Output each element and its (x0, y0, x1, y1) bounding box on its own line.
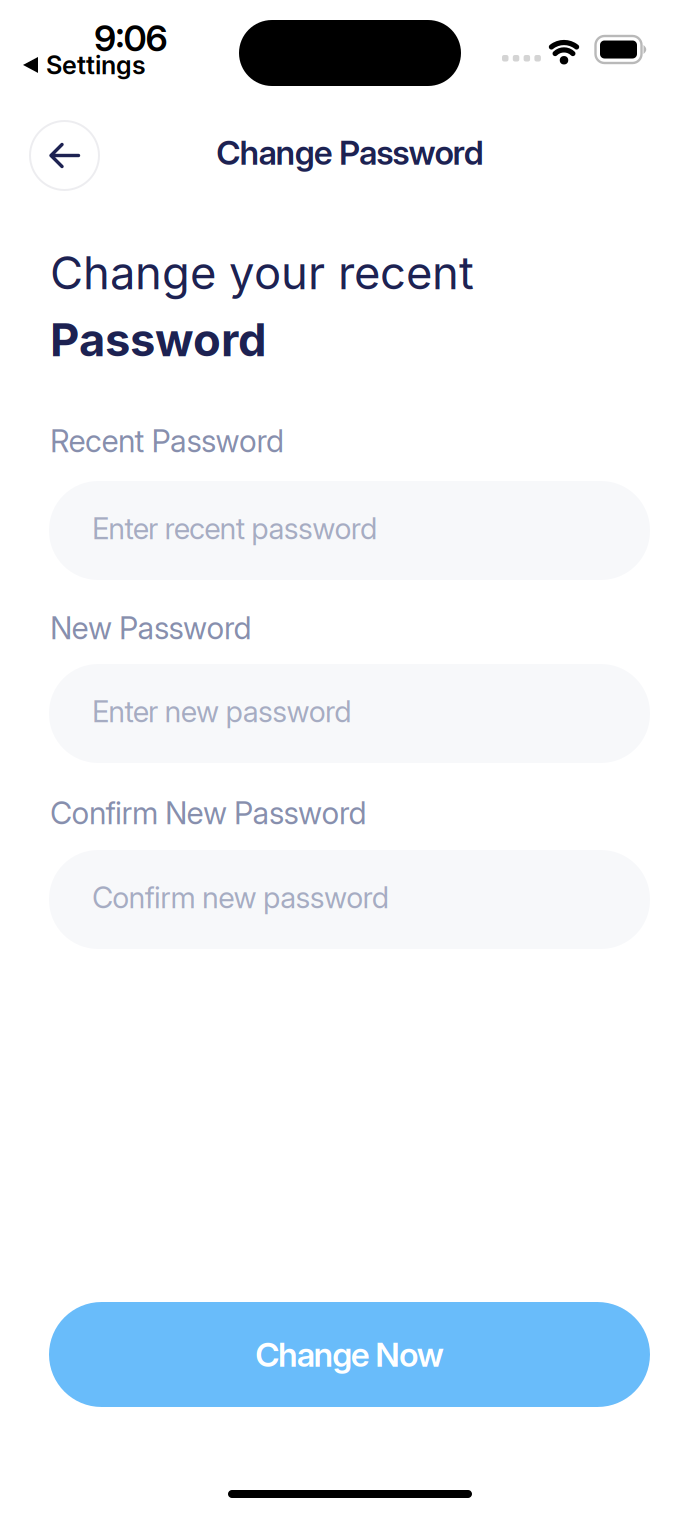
button[interactable]: Enter new password (49, 664, 650, 763)
staticText: Recent Password (50, 423, 284, 459)
staticText: Enter recent password (92, 511, 377, 546)
staticText: Confirm New Password (50, 795, 366, 831)
staticText: Change your recent (50, 246, 474, 299)
button[interactable]: Change Now (49, 1302, 650, 1407)
staticText: Change Password (216, 133, 484, 172)
staticText: Settings (46, 50, 146, 80)
button[interactable]: Settings (23, 50, 146, 80)
staticText: Change Now (255, 1335, 444, 1374)
button[interactable] (30, 121, 99, 190)
button[interactable]: Enter recent password (49, 481, 650, 580)
staticText: Confirm new password (92, 880, 389, 915)
staticText: Password (50, 313, 267, 366)
staticText: Enter new password (92, 694, 351, 729)
staticText: New Password (50, 610, 251, 646)
staticText: 9:06 (94, 17, 168, 59)
button[interactable]: Confirm new password (49, 850, 650, 949)
